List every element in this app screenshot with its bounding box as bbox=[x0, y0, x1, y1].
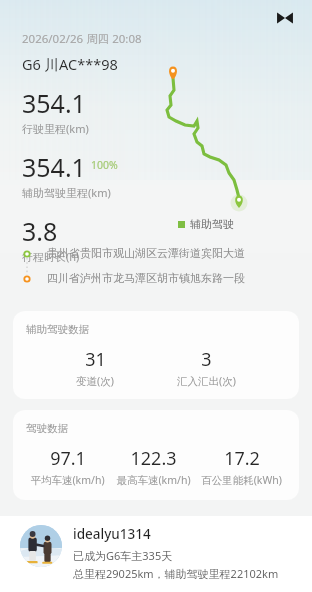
staticText: 总里程29025km，辅助驾驶里程22102km bbox=[73, 566, 279, 581]
staticText: 122.3 bbox=[130, 446, 177, 471]
staticText: 354.1 bbox=[22, 150, 86, 184]
staticText: 100% bbox=[91, 158, 118, 172]
staticText: 行程时长(h) bbox=[22, 249, 80, 264]
staticText: 已成为G6车主335天 bbox=[73, 548, 173, 563]
staticText: 2026/02/26 周四 20:08 bbox=[22, 31, 142, 47]
staticText: 四川省泸州市龙马潭区胡市镇旭东路一段 bbox=[47, 271, 245, 285]
button[interactable]: Collapse bbox=[272, 5, 298, 31]
staticText: 平均车速(km/h) bbox=[30, 473, 105, 487]
staticText: 辅助驾驶数据 bbox=[26, 323, 89, 336]
button[interactable]: idealyu1314 bbox=[0, 516, 312, 592]
staticText: 百公里能耗(kWh) bbox=[201, 473, 282, 487]
staticText: 辅助驾驶里程(km) bbox=[22, 185, 111, 200]
staticText: 3.8 bbox=[22, 214, 58, 248]
staticText: G6 川AC***98 bbox=[22, 54, 118, 74]
button[interactable]: 辅助驾驶数据 bbox=[13, 311, 299, 399]
staticText: 97.1 bbox=[50, 446, 86, 471]
staticText: 354.1 bbox=[22, 86, 86, 120]
staticText: 3 bbox=[201, 347, 212, 372]
staticText: 31 bbox=[85, 347, 106, 372]
staticText: 驾驶数据 bbox=[26, 422, 68, 435]
staticText: 辅助驾驶 bbox=[190, 217, 234, 231]
staticText: 行驶里程(km) bbox=[22, 121, 89, 136]
staticText: idealyu1314 bbox=[73, 525, 151, 543]
button[interactable]: 驾驶数据 bbox=[13, 410, 299, 500]
staticText: 变道(次) bbox=[76, 374, 114, 388]
staticText: 贵州省贵阳市观山湖区云潭街道宾阳大道 bbox=[47, 246, 245, 260]
staticText: 17.2 bbox=[224, 446, 260, 471]
staticText: 汇入汇出(次) bbox=[177, 374, 236, 388]
staticText: 最高车速(km/h) bbox=[116, 473, 191, 487]
